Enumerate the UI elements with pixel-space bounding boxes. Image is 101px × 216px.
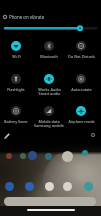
staticText: Bluetooth <box>40 54 58 59</box>
button[interactable]: Auto-rotate <box>65 74 97 92</box>
staticText: Auto-rotate <box>71 87 92 92</box>
staticText: Flashlight <box>7 87 25 92</box>
staticText: Phone on vibrate <box>9 14 45 20</box>
staticText: Mobile data Samsung mobile <box>34 119 64 129</box>
button[interactable]: Settings <box>88 130 98 140</box>
staticText: Battery Saver <box>4 119 28 124</box>
button[interactable]: App <box>20 153 26 159</box>
button[interactable]: Brightness <box>0 24 101 33</box>
staticText: Do Not Disturb <box>68 54 95 59</box>
button[interactable]: App <box>45 153 52 160</box>
button[interactable]: Mobile data Samsung mobile <box>33 106 65 129</box>
staticText: Airplane mode <box>68 119 95 124</box>
button[interactable]: Edit tiles <box>2 131 11 140</box>
button[interactable]: Phone on vibrate <box>3 13 45 20</box>
button[interactable]: Wi-Fi <box>0 41 32 59</box>
button[interactable]: App <box>84 182 93 191</box>
button[interactable]: Battery Saver <box>0 106 32 124</box>
button[interactable]: App <box>25 182 34 191</box>
button[interactable]: App <box>63 182 72 191</box>
button[interactable]: Bluetooth <box>33 41 65 59</box>
button[interactable]: App <box>82 150 88 156</box>
staticText: Wi-Fi <box>12 54 21 59</box>
button[interactable]: Airplane mode <box>65 106 97 124</box>
button[interactable]: App <box>45 182 54 191</box>
button[interactable]: Do Not Disturb <box>65 41 97 59</box>
staticText: Works Audio Smart audio <box>38 87 61 97</box>
button[interactable]: Works Audio Smart audio <box>33 74 65 97</box>
button[interactable]: App <box>6 153 12 159</box>
button[interactable]: App <box>62 151 73 162</box>
button[interactable]: Flashlight <box>0 74 32 92</box>
button[interactable]: App <box>5 182 14 191</box>
button[interactable]: App <box>28 151 37 160</box>
button[interactable]: Search <box>4 197 96 206</box>
